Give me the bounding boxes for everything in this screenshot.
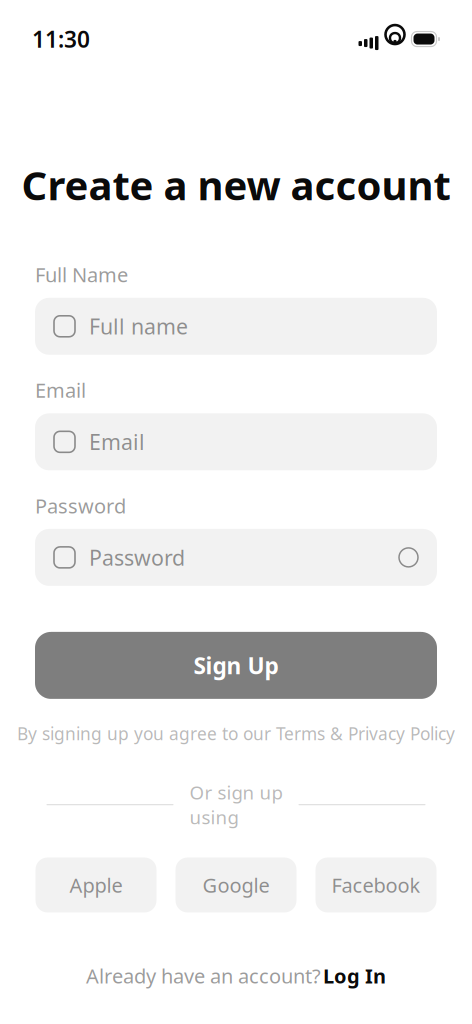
staticText: Email [35, 377, 86, 403]
staticText: Already have an account? [86, 962, 321, 989]
button[interactable]: Already have an account? [76, 954, 396, 997]
staticText: Full name [89, 312, 188, 340]
staticText: By signing up you agree to our Terms & P… [17, 722, 455, 745]
button[interactable]: Full name [35, 298, 437, 355]
staticText: Apple [69, 872, 122, 898]
button[interactable]: Google [175, 857, 296, 912]
button[interactable]: Sign Up [35, 632, 437, 699]
staticText: Google [202, 872, 269, 898]
staticText: Log In [323, 962, 386, 989]
staticText: Password [35, 492, 126, 519]
staticText: Password [89, 543, 185, 571]
staticText: Facebook [331, 872, 420, 898]
staticText: Or sign up using [189, 780, 282, 829]
staticText: Full Name [35, 261, 128, 288]
button[interactable]: Password [35, 529, 437, 586]
staticText: Sign Up [193, 650, 278, 680]
button[interactable]: Apple [35, 857, 156, 912]
button[interactable]: Email [35, 413, 437, 470]
staticText: 11:30 [32, 24, 90, 54]
button[interactable]: Facebook [315, 857, 436, 912]
staticText: Email [89, 428, 145, 456]
staticText: Create a new account [21, 158, 450, 211]
